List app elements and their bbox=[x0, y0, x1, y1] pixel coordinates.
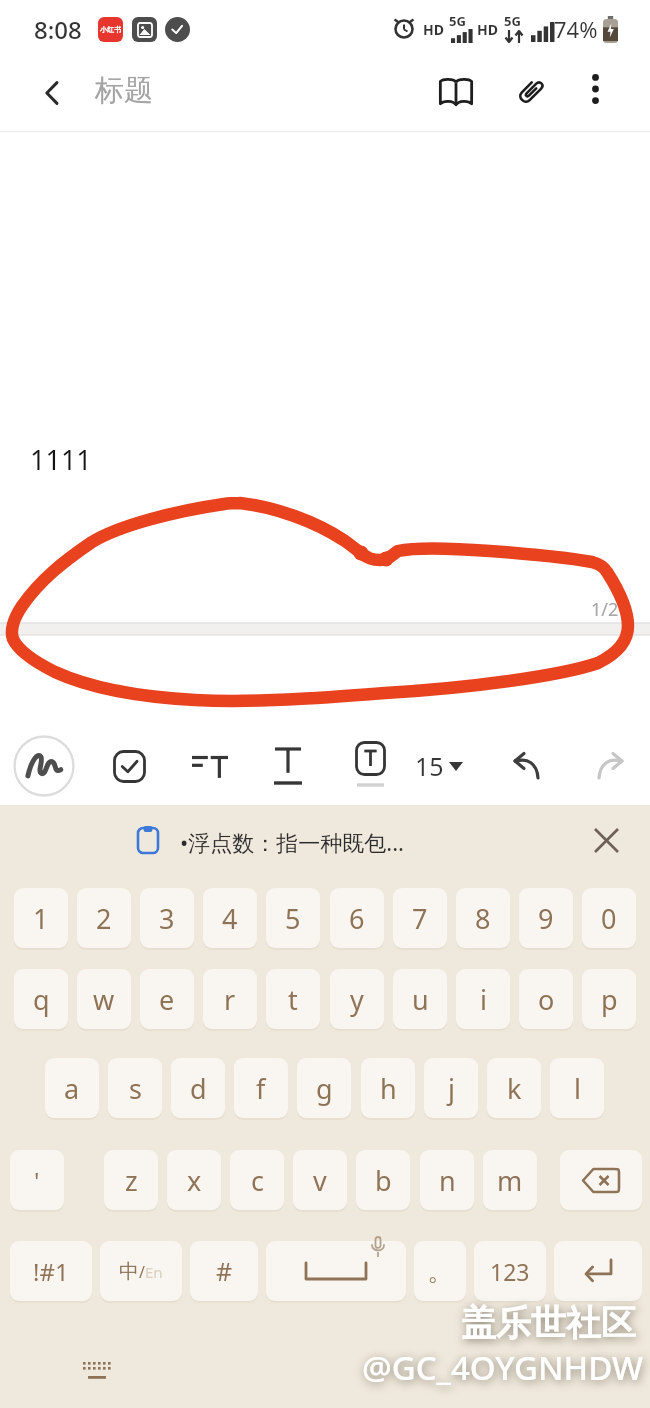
staticText: o bbox=[538, 981, 555, 1018]
button[interactable]: 。 bbox=[414, 1241, 466, 1301]
button[interactable]: 6 bbox=[330, 888, 384, 948]
button[interactable]: z bbox=[104, 1150, 158, 1210]
staticText: z bbox=[125, 1162, 138, 1199]
staticText: b bbox=[375, 1162, 392, 1199]
button[interactable]: 中 bbox=[100, 1241, 182, 1301]
button[interactable]: u bbox=[393, 969, 447, 1029]
button[interactable] bbox=[506, 68, 554, 116]
button[interactable]: 8 bbox=[456, 888, 510, 948]
button[interactable]: 9 bbox=[519, 888, 573, 948]
staticText: y bbox=[350, 981, 364, 1018]
staticText: h bbox=[380, 1070, 397, 1107]
button[interactable] bbox=[30, 70, 76, 116]
button[interactable]: 3 bbox=[140, 888, 194, 948]
button[interactable] bbox=[554, 1241, 642, 1301]
staticText: 2 bbox=[96, 900, 112, 937]
button[interactable]: 4 bbox=[203, 888, 257, 948]
staticText: 1 bbox=[33, 900, 49, 937]
button[interactable]: a bbox=[45, 1058, 99, 1118]
staticText: / bbox=[139, 1261, 145, 1283]
staticText: s bbox=[129, 1070, 142, 1107]
staticText: v bbox=[313, 1162, 327, 1199]
button[interactable]: y bbox=[330, 969, 384, 1029]
button[interactable]: 7 bbox=[393, 888, 447, 948]
button[interactable]: s bbox=[108, 1058, 162, 1118]
button[interactable] bbox=[266, 1241, 406, 1301]
button[interactable]: h bbox=[361, 1058, 415, 1118]
staticText: 123 bbox=[490, 1256, 530, 1287]
staticText: HD bbox=[423, 20, 444, 39]
button[interactable]: e bbox=[140, 969, 194, 1029]
staticText: 3 bbox=[159, 900, 175, 937]
button[interactable]: •浮点数：指一种既包... bbox=[180, 827, 404, 857]
button[interactable] bbox=[574, 68, 616, 110]
button[interactable]: n bbox=[420, 1150, 474, 1210]
staticText: f bbox=[256, 1070, 266, 1107]
button[interactable]: x bbox=[167, 1150, 221, 1210]
staticText: 4 bbox=[222, 900, 238, 937]
staticText: 中 bbox=[119, 1259, 139, 1284]
button[interactable]: g bbox=[297, 1058, 351, 1118]
button[interactable]: i bbox=[456, 969, 510, 1029]
staticText: c bbox=[251, 1162, 264, 1199]
staticText: n bbox=[439, 1162, 456, 1199]
staticText: 9 bbox=[538, 900, 554, 937]
button[interactable]: f bbox=[234, 1058, 288, 1118]
button[interactable]: w bbox=[77, 969, 131, 1029]
button[interactable] bbox=[13, 735, 75, 797]
staticText: q bbox=[33, 981, 50, 1018]
staticText: l bbox=[574, 1070, 581, 1107]
button[interactable]: v bbox=[293, 1150, 347, 1210]
button[interactable]: 0 bbox=[582, 888, 636, 948]
button[interactable]: 1 bbox=[14, 888, 68, 948]
staticText: u bbox=[412, 981, 429, 1018]
button[interactable]: ' bbox=[10, 1150, 64, 1210]
button[interactable]: # bbox=[190, 1241, 258, 1301]
button[interactable] bbox=[75, 1353, 119, 1387]
staticText: r bbox=[224, 981, 236, 1018]
button[interactable]: b bbox=[356, 1150, 410, 1210]
button[interactable]: k bbox=[487, 1058, 541, 1118]
button[interactable]: t bbox=[266, 969, 320, 1029]
staticText: m bbox=[497, 1162, 523, 1199]
staticText: 0 bbox=[601, 900, 617, 937]
staticText: 5 bbox=[285, 900, 301, 937]
button[interactable]: l bbox=[550, 1058, 604, 1118]
staticText: En bbox=[145, 1262, 163, 1282]
button[interactable] bbox=[432, 68, 480, 116]
staticText: w bbox=[93, 981, 115, 1018]
button[interactable] bbox=[583, 817, 629, 863]
staticText: 15 bbox=[415, 749, 444, 783]
button[interactable]: p bbox=[582, 969, 636, 1029]
button[interactable] bbox=[560, 1150, 642, 1210]
staticText: 标题 bbox=[95, 72, 153, 109]
button[interactable]: 2 bbox=[77, 888, 131, 948]
button[interactable]: j bbox=[424, 1058, 478, 1118]
staticText: 小红书 bbox=[100, 25, 121, 34]
button[interactable]: o bbox=[519, 969, 573, 1029]
staticText: d bbox=[190, 1070, 207, 1107]
staticText: 5G bbox=[504, 12, 521, 30]
staticText: 1/2 bbox=[591, 597, 619, 622]
button[interactable]: d bbox=[171, 1058, 225, 1118]
button[interactable] bbox=[503, 742, 551, 790]
button[interactable]: 5 bbox=[266, 888, 320, 948]
staticText: p bbox=[601, 981, 618, 1018]
button[interactable] bbox=[105, 742, 153, 790]
staticText: 5G bbox=[449, 12, 466, 30]
button[interactable] bbox=[586, 742, 634, 790]
button[interactable]: 123 bbox=[474, 1241, 546, 1301]
staticText: 1111 bbox=[30, 441, 92, 478]
button[interactable] bbox=[346, 740, 394, 788]
button[interactable] bbox=[186, 742, 234, 790]
staticText: !#1 bbox=[33, 1255, 69, 1288]
button[interactable]: q bbox=[14, 969, 68, 1029]
staticText: 74% bbox=[554, 14, 598, 44]
button[interactable]: c bbox=[230, 1150, 284, 1210]
button[interactable]: 15 bbox=[415, 742, 463, 790]
button[interactable]: m bbox=[483, 1150, 537, 1210]
button[interactable] bbox=[264, 742, 312, 790]
button[interactable]: !#1 bbox=[10, 1241, 92, 1301]
button[interactable]: r bbox=[203, 969, 257, 1029]
staticText: x bbox=[187, 1162, 202, 1199]
